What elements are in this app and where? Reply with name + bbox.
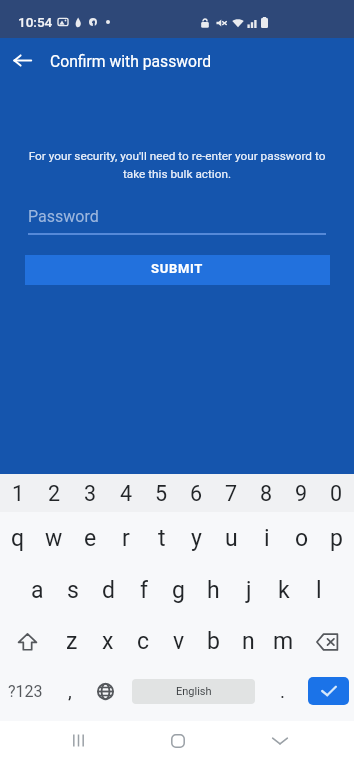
staticText: i xyxy=(264,525,270,552)
button[interactable]: c xyxy=(126,616,161,667)
staticText: Password xyxy=(28,207,99,226)
button[interactable]: . xyxy=(264,667,302,715)
button[interactable]: x xyxy=(90,616,126,667)
staticText: 5 xyxy=(155,481,168,506)
button[interactable]: t xyxy=(144,512,179,565)
button[interactable]: e xyxy=(72,512,108,565)
button[interactable]: 5 xyxy=(144,474,179,512)
staticText: q xyxy=(11,525,25,552)
button[interactable]: Shift xyxy=(0,616,54,667)
staticText: 4 xyxy=(120,481,133,506)
staticText: a xyxy=(31,577,44,604)
staticText: p xyxy=(330,525,343,552)
staticText: b xyxy=(207,628,220,655)
staticText: g xyxy=(172,577,185,604)
button[interactable]: i xyxy=(249,512,284,565)
staticText: o xyxy=(295,525,309,552)
staticText: n xyxy=(242,628,255,655)
staticText: f xyxy=(140,577,148,604)
button[interactable]: n xyxy=(231,616,266,667)
button[interactable]: Recent apps xyxy=(47,722,109,758)
staticText: z xyxy=(66,628,78,655)
staticText: c xyxy=(137,628,150,655)
staticText: 2 xyxy=(48,481,61,506)
button[interactable]: English xyxy=(132,679,255,704)
button[interactable]: 3 xyxy=(72,474,108,512)
button[interactable]: m xyxy=(266,616,301,667)
staticText: v xyxy=(173,628,185,655)
button[interactable]: u xyxy=(214,512,249,565)
button[interactable]: 0 xyxy=(319,474,354,512)
button[interactable]: 9 xyxy=(284,474,319,512)
button[interactable]: v xyxy=(161,616,196,667)
button[interactable]: b xyxy=(196,616,231,667)
staticText: h xyxy=(207,577,220,604)
staticText: For your security, you'll need to re-ent… xyxy=(27,149,327,181)
staticText: 6 xyxy=(190,481,203,506)
staticText: 7 xyxy=(225,481,238,506)
button[interactable]: r xyxy=(108,512,144,565)
staticText: s xyxy=(67,577,79,604)
staticText: 3 xyxy=(84,481,97,506)
button[interactable]: ?123 xyxy=(0,667,51,715)
button[interactable]: k xyxy=(266,565,301,616)
staticText: l xyxy=(316,577,322,604)
button[interactable]: Back xyxy=(249,722,311,758)
staticText: SUBMIT xyxy=(151,261,204,276)
staticText: Confirm with password xyxy=(50,52,212,70)
staticText: u xyxy=(225,525,238,552)
staticText: r xyxy=(122,525,130,552)
button[interactable]: l xyxy=(301,565,336,616)
button[interactable]: Enter xyxy=(308,677,349,705)
staticText: w xyxy=(45,525,63,552)
button[interactable]: w xyxy=(36,512,72,565)
button[interactable]: o xyxy=(284,512,319,565)
button[interactable]: Backspace xyxy=(301,616,354,667)
staticText: . xyxy=(280,680,286,702)
button[interactable]: z xyxy=(54,616,90,667)
staticText: , xyxy=(68,680,72,702)
staticText: x xyxy=(102,628,114,655)
staticText: e xyxy=(84,525,97,552)
button[interactable]: SUBMIT xyxy=(25,255,330,285)
button[interactable]: Navigate up xyxy=(0,38,44,83)
button[interactable]: p xyxy=(319,512,354,565)
staticText: 1 xyxy=(12,481,25,506)
button[interactable]: 2 xyxy=(36,474,72,512)
button[interactable]: 8 xyxy=(249,474,284,512)
button[interactable]: s xyxy=(55,565,91,616)
button[interactable]: 6 xyxy=(179,474,214,512)
staticText: y xyxy=(191,525,202,552)
staticText: j xyxy=(246,577,252,604)
staticText: 8 xyxy=(260,481,273,506)
staticText: 9 xyxy=(295,481,308,506)
button[interactable]: d xyxy=(91,565,126,616)
button[interactable]: 4 xyxy=(108,474,144,512)
staticText: English xyxy=(176,685,212,698)
staticText: t xyxy=(158,525,166,552)
staticText: k xyxy=(278,577,290,604)
button[interactable]: 1 xyxy=(0,474,36,512)
button[interactable]: f xyxy=(126,565,161,616)
button[interactable]: Change language xyxy=(89,667,122,715)
button[interactable]: 7 xyxy=(214,474,249,512)
staticText: ?123 xyxy=(8,682,43,701)
staticText: d xyxy=(102,577,115,604)
button[interactable]: y xyxy=(179,512,214,565)
button[interactable]: j xyxy=(231,565,266,616)
staticText: 10:54 xyxy=(18,14,53,30)
staticText: m xyxy=(273,628,294,655)
button[interactable]: h xyxy=(196,565,231,616)
button[interactable]: Home xyxy=(147,722,209,758)
button[interactable]: g xyxy=(161,565,196,616)
button[interactable]: a xyxy=(19,565,55,616)
button[interactable]: q xyxy=(0,512,36,565)
button[interactable]: , xyxy=(51,667,89,715)
staticText: 0 xyxy=(330,481,343,506)
